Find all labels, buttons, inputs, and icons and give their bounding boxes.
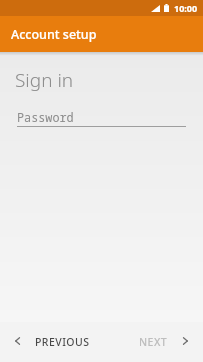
- other: Previous: [15, 337, 20, 345]
- button[interactable]: NEXT: [101, 335, 203, 349]
- button[interactable]: Previous: [0, 335, 101, 349]
- staticText: 10:00: [174, 2, 198, 14]
- button[interactable]: Password: [0, 109, 203, 127]
- other: Next: [183, 337, 188, 345]
- staticText: Sign in: [15, 67, 74, 93]
- staticText: NEXT: [139, 335, 168, 349]
- staticText: Account setup: [11, 26, 97, 43]
- staticText: Password: [17, 109, 74, 125]
- staticText: PREVIOUS: [35, 335, 90, 349]
